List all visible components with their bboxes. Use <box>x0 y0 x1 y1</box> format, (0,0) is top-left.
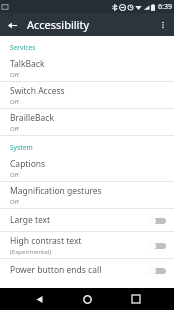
button[interactable]: High contrast text <box>0 232 174 258</box>
staticText: Off <box>10 98 19 106</box>
button[interactable]: Navigate up <box>3 16 21 34</box>
staticText: TalkBack <box>10 58 45 70</box>
button[interactable]: Switch Access <box>0 82 174 108</box>
staticText: Off <box>10 71 19 79</box>
staticText: Captions <box>10 158 46 170</box>
staticText: 6:39 <box>158 2 172 12</box>
staticText: Power button ends call <box>10 264 102 276</box>
staticText: Off <box>10 125 19 133</box>
staticText: System <box>10 143 33 152</box>
button[interactable]: Home <box>77 289 97 309</box>
button[interactable]: More options <box>154 16 172 34</box>
button[interactable]: BrailleBack <box>0 109 174 135</box>
button[interactable]: Back <box>29 289 49 309</box>
staticText: (Experimental) <box>10 248 51 256</box>
staticText: Large text <box>10 214 51 226</box>
button[interactable]: TalkBack <box>0 55 174 81</box>
staticText: Accessibility <box>27 17 90 32</box>
staticText: High contrast text <box>10 235 82 247</box>
button[interactable]: Large text <box>0 209 174 231</box>
button[interactable]: Power button ends call <box>0 259 174 281</box>
staticText: Off <box>10 171 19 179</box>
button[interactable]: Magnification gestures <box>0 182 174 208</box>
staticText: BrailleBack <box>10 112 54 124</box>
staticText: Magnification gestures <box>10 185 102 197</box>
button[interactable]: Recent apps <box>126 289 146 309</box>
button[interactable]: Captions <box>0 155 174 181</box>
staticText: Services <box>10 43 36 52</box>
staticText: Off <box>10 198 19 206</box>
staticText: Switch Access <box>10 85 65 97</box>
